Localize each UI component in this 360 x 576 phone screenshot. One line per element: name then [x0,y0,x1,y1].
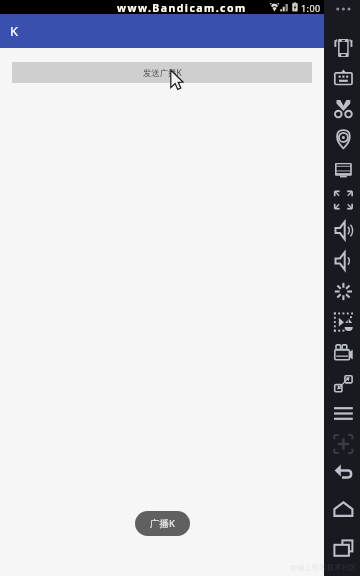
staticText: 1:00 [301,2,321,14]
staticText: @编上程客技术社区 [290,562,357,572]
button[interactable]: Location [329,125,358,153]
staticText: 广播K [150,517,175,530]
button[interactable]: Back [329,457,358,485]
button[interactable]: Zoom in [329,430,358,458]
button[interactable]: 发送广播K [12,62,312,83]
button[interactable]: Resize [329,369,358,397]
button[interactable]: Extended controls [329,400,358,428]
button[interactable]: Cut [329,95,358,123]
button[interactable]: Overview [329,534,358,562]
staticText: 发送广播K [143,67,182,78]
button[interactable]: Volume down [329,247,358,275]
button[interactable]: Keyboard [329,64,358,92]
staticText: www.Bandicam.com [117,1,247,15]
button[interactable]: Rotate [329,34,358,62]
button[interactable]: Brightness [329,278,358,306]
button[interactable]: Virtual sensors [329,308,358,336]
button[interactable]: Home [329,496,358,524]
button[interactable]: Volume up [329,217,358,245]
button[interactable]: Fullscreen [329,186,358,214]
staticText: K [10,22,19,40]
button[interactable]: More [330,2,358,16]
button[interactable]: Display [329,156,358,184]
button[interactable]: Record screen [329,339,358,367]
